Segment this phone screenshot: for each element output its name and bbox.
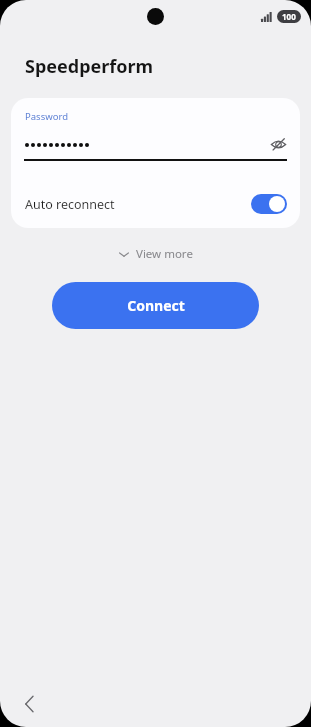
- staticText: 100: [282, 11, 296, 22]
- button[interactable]: Hide password: [267, 135, 289, 154]
- staticText: View more: [136, 246, 193, 262]
- staticText: Password: [25, 110, 68, 123]
- staticText: Speedperform: [25, 54, 154, 79]
- button[interactable]: Auto reconnect: [11, 191, 300, 217]
- button[interactable]: Back: [14, 689, 44, 719]
- button[interactable]: Connect: [52, 282, 259, 329]
- button[interactable]: View more: [109, 242, 203, 266]
- button[interactable]: Auto reconnect toggle: [251, 194, 287, 214]
- staticText: Connect: [127, 296, 185, 315]
- staticText: Auto reconnect: [25, 196, 251, 213]
